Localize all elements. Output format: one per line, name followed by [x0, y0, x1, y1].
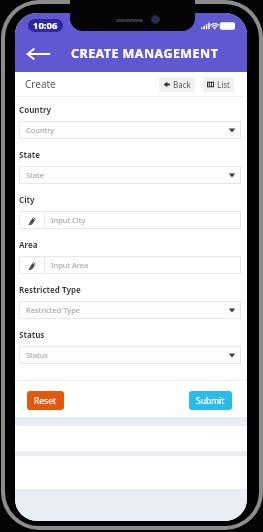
staticText: Input City — [51, 215, 86, 225]
button[interactable]: Restricted Type — [19, 301, 241, 319]
staticText: Status — [26, 350, 48, 360]
button[interactable]: Back — [15, 39, 62, 68]
button[interactable]: Status — [19, 346, 241, 364]
button[interactable]: Input Area — [45, 256, 241, 274]
staticText: State — [26, 170, 44, 180]
button[interactable]: Submit — [189, 391, 232, 410]
staticText: Restricted Type — [19, 284, 81, 295]
button[interactable]: Country — [19, 121, 241, 139]
staticText: Restricted Type — [26, 305, 81, 315]
button[interactable]: Edit — [19, 211, 44, 229]
staticText: City — [19, 194, 35, 205]
staticText: Submit — [196, 395, 225, 407]
staticText: Status — [19, 329, 45, 340]
button[interactable]: Input City — [45, 211, 241, 229]
button[interactable]: State — [19, 166, 241, 184]
staticText: Create — [25, 77, 56, 91]
staticText: Area — [19, 239, 38, 250]
button[interactable]: Edit — [19, 256, 44, 274]
button[interactable]: Reset — [27, 391, 64, 410]
staticText: Reset — [34, 395, 57, 407]
staticText: Input Area — [51, 260, 89, 270]
staticText: List — [217, 79, 230, 90]
button[interactable]: List — [203, 77, 234, 92]
staticText: 10:06 — [33, 19, 58, 32]
staticText: Country — [19, 104, 52, 115]
staticText: CREATE MANAGEMENT — [71, 45, 219, 62]
staticText: Back — [173, 79, 191, 90]
staticText: Country — [26, 125, 55, 135]
button[interactable]: Back — [159, 77, 195, 92]
staticText: State — [19, 149, 40, 160]
